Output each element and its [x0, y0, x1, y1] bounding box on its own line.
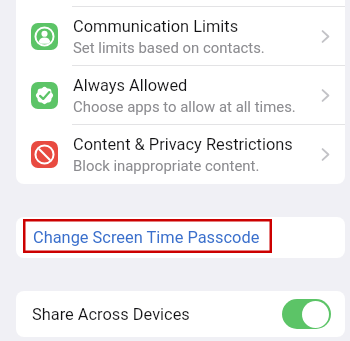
staticText: Content & Privacy Restrictions — [73, 135, 293, 154]
staticText: Block inappropriate content. — [73, 157, 260, 174]
staticText: Set limits based on contacts. — [73, 39, 265, 56]
staticText: Change Screen Time Passcode — [33, 228, 260, 247]
button[interactable]: Share Across Devices — [16, 291, 345, 337]
staticText: Choose apps to allow at all times. — [73, 98, 296, 115]
button[interactable]: Always Allowed — [16, 66, 345, 124]
button[interactable]: Share Across Devices toggle, on — [282, 299, 331, 329]
button[interactable]: Content & Privacy Restrictions — [16, 125, 345, 183]
button[interactable]: Communication Limits — [16, 7, 345, 65]
button[interactable]: Change Screen Time Passcode — [16, 217, 345, 258]
staticText: Share Across Devices — [32, 305, 190, 324]
staticText: Always Allowed — [73, 76, 188, 95]
staticText: Communication Limits — [73, 17, 239, 36]
